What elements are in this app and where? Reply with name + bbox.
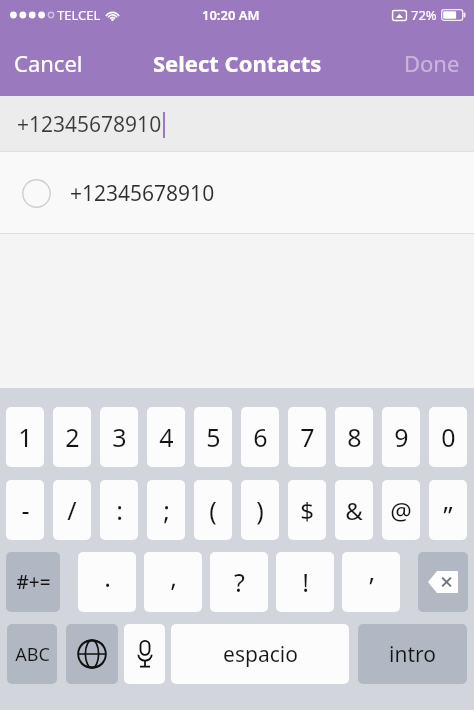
button[interactable]: 1 — [6, 407, 44, 467]
staticText: , — [170, 560, 177, 594]
staticText: ; — [163, 493, 170, 527]
button[interactable]: 0 — [429, 407, 467, 467]
staticText: 2 — [65, 420, 80, 454]
staticText: Cancel — [14, 48, 83, 78]
button[interactable]: 3 — [100, 407, 138, 467]
button[interactable]: ) — [241, 480, 279, 540]
staticText: 0 — [441, 420, 456, 454]
button[interactable]: +12345678910 — [0, 152, 474, 234]
staticText: intro — [389, 640, 436, 669]
button[interactable]: ( — [194, 480, 232, 540]
button[interactable]: $ — [288, 480, 326, 540]
button[interactable]: ! — [276, 552, 334, 612]
staticText: @ — [390, 494, 412, 527]
button[interactable]: , — [144, 552, 202, 612]
staticText: Select Contacts — [153, 48, 322, 78]
staticText: ABC — [15, 642, 50, 667]
staticText: 72% — [411, 6, 437, 24]
button[interactable]: ? — [210, 552, 268, 612]
staticText: +12345678910 — [70, 179, 215, 208]
button[interactable]: . — [78, 552, 136, 612]
button[interactable]: : — [100, 480, 138, 540]
button[interactable]: & — [335, 480, 373, 540]
staticText: 8 — [347, 420, 362, 454]
staticText: : — [116, 493, 123, 527]
staticText: TELCEL — [57, 6, 101, 24]
button[interactable]: 6 — [241, 407, 279, 467]
staticText: / — [67, 493, 77, 527]
button[interactable]: - — [6, 480, 44, 540]
button[interactable]: ’ — [342, 552, 400, 612]
staticText: 7 — [300, 420, 315, 454]
staticText: ! — [302, 565, 309, 599]
button[interactable]: Backspace — [418, 552, 468, 612]
button[interactable]: 2 — [53, 407, 91, 467]
staticText: ? — [234, 565, 245, 599]
staticText: 6 — [253, 420, 268, 454]
staticText: - — [21, 493, 30, 527]
staticText: 3 — [112, 420, 127, 454]
button[interactable]: +12345678910 — [0, 96, 474, 152]
button[interactable]: Dictation — [124, 624, 165, 684]
button[interactable]: espacio — [171, 624, 349, 684]
staticText: 1 — [18, 420, 33, 454]
staticText: 9 — [394, 420, 409, 454]
button[interactable]: 8 — [335, 407, 373, 467]
staticText: +12345678910 — [17, 110, 162, 139]
staticText: espacio — [223, 640, 298, 669]
staticText: ” — [443, 497, 453, 532]
staticText: ) — [256, 493, 264, 527]
staticText: 4 — [159, 420, 174, 454]
button[interactable]: ” — [429, 480, 467, 540]
button[interactable]: 5 — [194, 407, 232, 467]
button[interactable]: Change keyboard language — [66, 624, 118, 684]
staticText: Done — [404, 48, 460, 78]
staticText: 10:20 AM — [202, 6, 260, 24]
staticText: & — [345, 494, 363, 527]
button[interactable]: Done — [390, 38, 474, 88]
staticText: ’ — [369, 569, 374, 603]
staticText: ( — [209, 493, 217, 527]
button[interactable]: 9 — [382, 407, 420, 467]
button[interactable]: @ — [382, 480, 420, 540]
button[interactable]: 7 — [288, 407, 326, 467]
staticText: $ — [300, 494, 314, 527]
staticText: . — [104, 560, 111, 594]
button[interactable]: intro — [358, 624, 467, 684]
button[interactable]: Cancel — [0, 38, 97, 88]
staticText: #+= — [16, 569, 51, 595]
button[interactable]: ; — [147, 480, 185, 540]
button[interactable]: 4 — [147, 407, 185, 467]
button[interactable]: #+= — [6, 552, 60, 612]
staticText: 5 — [206, 420, 221, 454]
button[interactable]: ABC — [7, 624, 57, 684]
button[interactable]: / — [53, 480, 91, 540]
